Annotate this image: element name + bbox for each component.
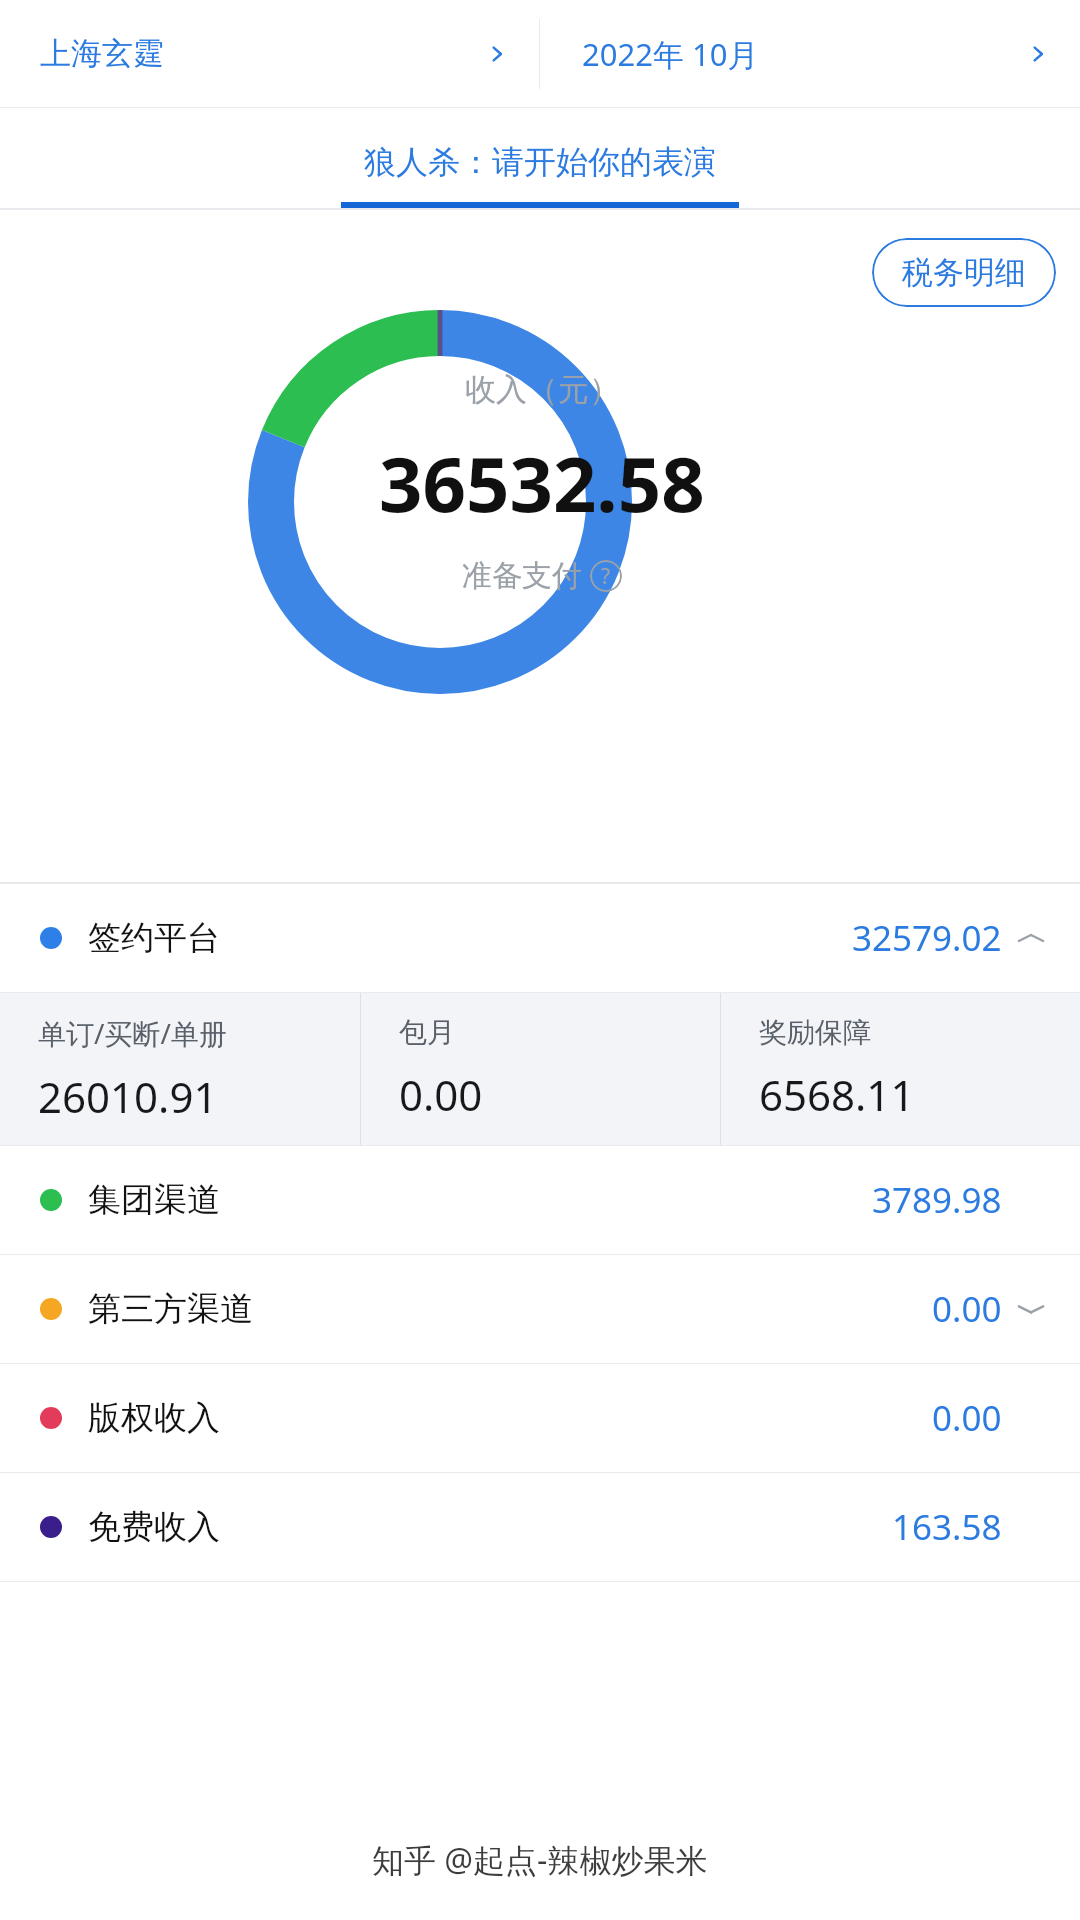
button[interactable]: 免费收入 (0, 1473, 1080, 1581)
staticText: 狼人杀：请开始你的表演 (364, 142, 716, 182)
button[interactable]: 包月 (361, 993, 720, 1145)
staticText: 0.00 (932, 1394, 1002, 1442)
button[interactable]: 单订/买断/单册 (0, 993, 360, 1145)
button[interactable]: 说明 (590, 560, 622, 592)
button[interactable]: 第三方渠道 (0, 1255, 1080, 1363)
button[interactable]: 奖励保障 (721, 993, 1080, 1145)
staticText: 税务明细 (902, 253, 1026, 292)
staticText: 收入（元） (465, 370, 620, 409)
staticText: 准备支付 (462, 557, 582, 595)
staticText: 上海玄霆 (40, 34, 164, 73)
staticText: 版权收入 (88, 1397, 220, 1439)
staticText: 免费收入 (88, 1506, 220, 1548)
staticText: 6568.11 (759, 1066, 915, 1123)
button[interactable]: 签约平台 (0, 884, 1080, 992)
button[interactable]: 税务明细 (872, 238, 1056, 307)
staticText: 163.58 (892, 1503, 1002, 1551)
staticText: 0.00 (932, 1285, 1002, 1333)
staticText: 2022年 10月 (582, 33, 759, 75)
button[interactable]: 版权收入 (0, 1364, 1080, 1472)
staticText: 奖励保障 (759, 1015, 871, 1050)
button[interactable]: 集团渠道 (0, 1146, 1080, 1254)
button[interactable]: 2022年 10月 (540, 0, 1080, 107)
staticText: 集团渠道 (88, 1179, 220, 1221)
staticText: 32579.02 (852, 914, 1002, 962)
staticText: 包月 (399, 1015, 455, 1050)
staticText: 签约平台 (88, 917, 220, 959)
staticText: 知乎 @起点-辣椒炒果米 (372, 1838, 708, 1882)
staticText: 3789.98 (872, 1176, 1002, 1224)
button[interactable]: 狼人杀：请开始你的表演 (0, 108, 1080, 208)
staticText: 单订/买断/单册 (38, 1014, 227, 1052)
staticText: 36532.58 (379, 431, 705, 535)
staticText: 第三方渠道 (88, 1288, 253, 1330)
staticText: 0.00 (399, 1066, 483, 1123)
staticText: 26010.91 (38, 1068, 218, 1125)
button[interactable]: 上海玄霆 (0, 0, 539, 107)
staticText: ? (601, 562, 611, 591)
